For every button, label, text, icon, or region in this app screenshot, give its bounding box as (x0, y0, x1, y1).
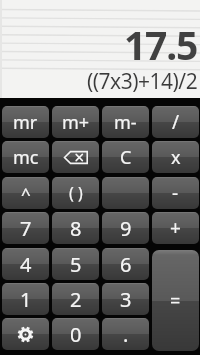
staticText: 6 (120, 251, 132, 278)
button[interactable]: C (102, 141, 149, 173)
staticText: 8 (70, 215, 82, 242)
button[interactable]: m+ (52, 106, 99, 138)
button[interactable]: . (102, 318, 149, 350)
staticText: 4 (20, 251, 32, 278)
button[interactable]: m- (102, 106, 149, 138)
button[interactable]: 3 (102, 283, 149, 315)
staticText: mc (13, 145, 39, 170)
staticText: 7 (20, 215, 32, 242)
button[interactable]: 9 (102, 212, 149, 244)
staticText: m+ (62, 110, 90, 135)
staticText: = (170, 288, 181, 313)
button[interactable]: mr (2, 106, 49, 138)
staticText: ^ (21, 182, 31, 205)
staticText: 2 (70, 286, 82, 313)
staticText: . (123, 321, 129, 348)
staticText: ( ) (69, 182, 83, 204)
button[interactable]: 0 (52, 318, 99, 350)
staticText: 5 (70, 251, 82, 278)
button[interactable]: - (152, 177, 199, 209)
button[interactable] (52, 141, 99, 173)
staticText: ((7x3)+14)/2 (87, 67, 198, 96)
button[interactable]: 7 (2, 212, 49, 244)
staticText: + (170, 215, 181, 241)
staticText: 17.5 (124, 18, 198, 71)
button[interactable] (102, 177, 149, 209)
staticText: 3 (120, 286, 132, 313)
button[interactable] (2, 318, 49, 350)
staticText: - (172, 180, 179, 206)
button[interactable]: ^ (2, 177, 49, 209)
staticText: 0 (70, 321, 82, 348)
staticText: mr (13, 110, 38, 135)
button[interactable]: 5 (52, 248, 99, 280)
button[interactable]: x (152, 141, 199, 173)
button[interactable]: 2 (52, 283, 99, 315)
button[interactable]: 4 (2, 248, 49, 280)
button[interactable]: ( ) (52, 177, 99, 209)
button[interactable]: 6 (102, 248, 149, 280)
staticText: C (120, 145, 132, 170)
staticText: x (171, 145, 181, 170)
button[interactable]: = (152, 250, 199, 351)
button[interactable]: / (152, 106, 199, 138)
button[interactable]: 1 (2, 283, 49, 315)
button[interactable]: mc (2, 141, 49, 173)
staticText: 1 (20, 286, 32, 313)
staticText: 9 (120, 215, 132, 242)
staticText: / (172, 109, 180, 135)
staticText: m- (114, 110, 137, 135)
button[interactable]: 8 (52, 212, 99, 244)
button[interactable]: + (152, 212, 199, 244)
